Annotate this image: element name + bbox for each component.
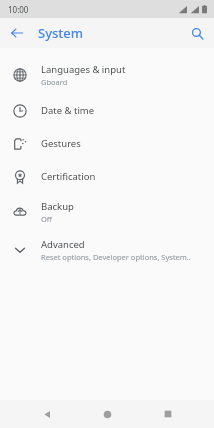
button[interactable]: Backup <box>0 193 214 231</box>
button[interactable]: Date & time <box>0 94 214 127</box>
staticText: Off <box>41 214 53 224</box>
staticText: 10:00 <box>8 4 29 15</box>
staticText: Certification <box>41 170 96 183</box>
button[interactable]: Home <box>93 400 121 428</box>
button[interactable]: Certification <box>0 160 214 193</box>
button[interactable]: Recent apps <box>154 400 182 428</box>
staticText: Gboard <box>41 77 68 87</box>
button[interactable]: Search <box>186 22 208 44</box>
button[interactable]: Languages & input <box>0 56 214 94</box>
button[interactable]: Gestures <box>0 127 214 160</box>
staticText: Languages & input <box>41 63 126 76</box>
staticText: System <box>38 24 84 42</box>
staticText: Gestures <box>41 137 81 150</box>
button[interactable]: Advanced <box>0 231 214 269</box>
staticText: Reset options, Developer options, System… <box>41 252 191 262</box>
button[interactable]: Back <box>6 22 28 44</box>
staticText: Advanced <box>41 238 85 251</box>
staticText: Date & time <box>41 104 95 117</box>
button[interactable]: Back <box>33 400 61 428</box>
staticText: Backup <box>41 200 74 213</box>
